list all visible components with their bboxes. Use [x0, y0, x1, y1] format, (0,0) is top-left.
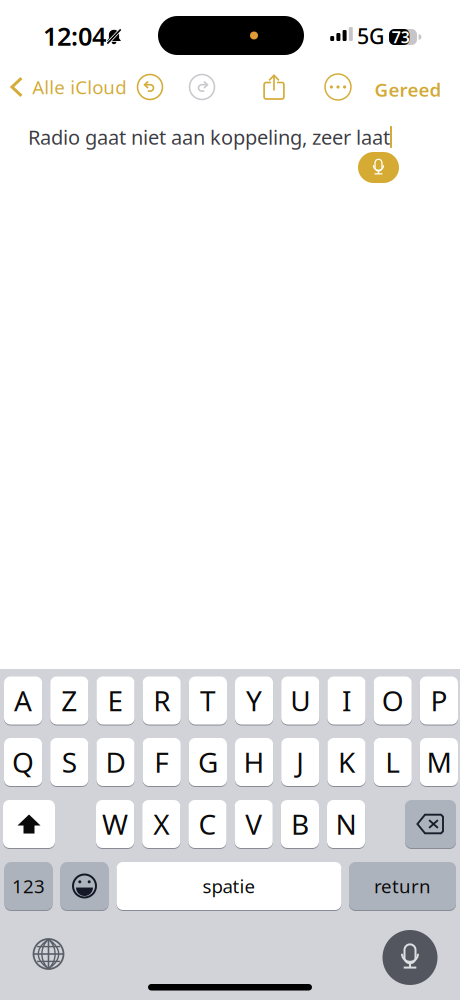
staticText: 73 [392, 26, 410, 48]
button[interactable]: H [235, 737, 273, 786]
staticText: J [296, 743, 304, 781]
button[interactable]: R [143, 676, 181, 725]
button[interactable]: Dictate [382, 930, 437, 985]
button[interactable]: S [50, 737, 88, 786]
staticText: Radio gaat niet aan koppeling, zeer laat [28, 124, 390, 150]
button[interactable]: V [235, 799, 273, 848]
button[interactable]: More options [325, 74, 351, 100]
button[interactable]: A [4, 676, 42, 725]
staticText: C [198, 805, 216, 843]
staticText: Z [61, 682, 77, 719]
staticText: Gereed [374, 77, 441, 102]
staticText: F [154, 743, 169, 781]
staticText: S [62, 743, 77, 781]
staticText: D [105, 743, 125, 781]
staticText: K [338, 743, 355, 781]
staticText: A [14, 682, 32, 719]
button[interactable]: 123 [4, 861, 52, 910]
staticText: U [290, 682, 310, 719]
button[interactable]: Share [264, 73, 285, 101]
button[interactable]: J [281, 737, 319, 786]
button[interactable]: Dictate [358, 152, 399, 183]
button[interactable]: spatie [116, 861, 341, 910]
staticText: Alle iCloud [32, 75, 126, 99]
staticText: O [382, 682, 404, 719]
staticText: 123 [12, 874, 45, 898]
staticText: P [430, 682, 447, 719]
button[interactable]: Emoji [60, 861, 108, 910]
button[interactable]: N [327, 799, 365, 848]
button[interactable]: Next keyboard [33, 939, 63, 969]
staticText: N [336, 805, 357, 843]
button[interactable]: Z [50, 676, 88, 725]
button[interactable]: K [327, 737, 366, 786]
button[interactable]: Redo [189, 74, 214, 99]
staticText: B [291, 805, 309, 843]
staticText: return [374, 874, 431, 898]
button[interactable]: U [281, 676, 319, 725]
staticText: V [245, 805, 262, 843]
staticText: L [385, 743, 400, 781]
button[interactable]: E [96, 676, 135, 725]
button[interactable]: Q [4, 737, 42, 786]
button[interactable]: Undo [137, 74, 162, 99]
staticText: Q [12, 743, 34, 781]
button[interactable]: D [96, 737, 135, 786]
button[interactable]: return [349, 861, 456, 910]
staticText: X [153, 805, 169, 843]
button[interactable]: I [327, 676, 366, 725]
button[interactable]: P [420, 676, 458, 725]
button[interactable]: Gereed [362, 72, 454, 106]
button[interactable]: Y [235, 676, 273, 725]
button[interactable]: Backspace [405, 799, 456, 848]
button[interactable]: W [96, 799, 134, 848]
button[interactable]: Shift [3, 799, 55, 848]
button[interactable]: O [374, 676, 412, 725]
staticText: 12:04 [43, 19, 106, 53]
button[interactable]: C [188, 799, 227, 848]
staticText: W [102, 805, 128, 843]
button[interactable]: X [142, 799, 180, 848]
staticText: R [153, 682, 170, 719]
button[interactable]: M [420, 737, 458, 786]
button[interactable]: G [189, 737, 227, 786]
button[interactable]: B [281, 799, 319, 848]
staticText: M [426, 743, 451, 781]
button[interactable]: F [143, 737, 181, 786]
button[interactable]: L [374, 737, 412, 786]
button[interactable]: Alle iCloud [0, 66, 460, 108]
staticText: I [342, 682, 351, 719]
button[interactable]: T [189, 676, 227, 725]
staticText: G [198, 743, 218, 781]
staticText: 5G [357, 22, 385, 50]
staticText: E [107, 682, 123, 719]
staticText: T [200, 682, 216, 719]
staticText: spatie [202, 874, 255, 898]
staticText: Y [246, 682, 262, 719]
staticText: H [244, 743, 265, 781]
